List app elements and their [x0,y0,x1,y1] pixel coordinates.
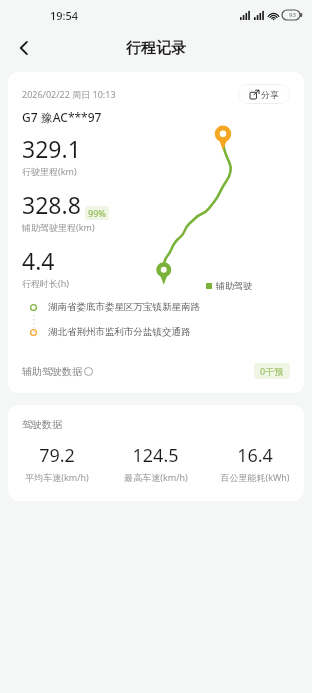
staticText: 辅助驾驶里程(km) [22,221,95,233]
staticText: 行驶里程(km) [22,165,77,177]
button[interactable]: Back [8,32,40,64]
staticText: 93 [289,11,296,19]
staticText: 行程记录 [126,39,186,58]
staticText: 124.5 [132,443,179,468]
staticText: 99% [88,207,106,219]
staticText: 平均车速(km/h) [25,471,89,483]
staticText: 分享 [261,89,279,100]
button[interactable]: 分享 [238,84,290,104]
staticText: 328.8 [22,189,81,220]
staticText: 湖南省娄底市娄星区万宝镇新星南路 [48,301,200,313]
staticText: 驾驶数据 [22,418,62,431]
staticText: 最高车速(km/h) [124,471,188,483]
staticText: 百公里能耗(kWh) [220,471,290,483]
staticText: 2026/02/22 周日 10:13 [22,88,116,100]
staticText: 19:54 [50,8,79,23]
staticText: 16.4 [237,443,273,468]
staticText: 辅助驾驶 [216,280,252,291]
staticText: 79.2 [39,443,75,468]
staticText: 辅助驾驶数据 [22,365,82,378]
staticText: G7 豫AC***97 [22,109,102,125]
staticText: 0干预 [260,365,284,377]
staticText: 湖北省荆州市监利市分盐镇交通路 [48,326,191,338]
staticText: 4.4 [22,245,55,276]
staticText: 329.1 [22,133,81,164]
staticText: 行程时长(h) [22,277,69,289]
